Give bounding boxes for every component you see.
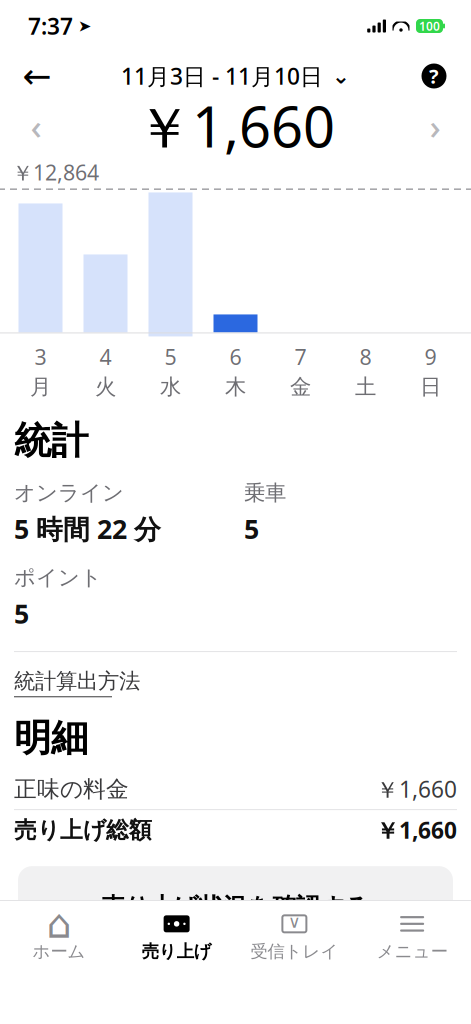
staticText: 売り上げ総額 bbox=[14, 816, 152, 844]
button[interactable]: 売り上げ状況を確認する bbox=[18, 866, 453, 936]
staticText: 火 bbox=[95, 374, 116, 400]
staticText: メニュー bbox=[377, 941, 448, 962]
staticText: 乗車 bbox=[244, 480, 286, 506]
staticText: 受信トレイ bbox=[250, 941, 338, 962]
staticText: 明細 bbox=[14, 715, 88, 761]
button[interactable]: 前の週 bbox=[14, 101, 58, 151]
staticText: 5 bbox=[244, 511, 259, 546]
staticText: 6 bbox=[229, 342, 241, 371]
staticText: 統計算出方法 bbox=[14, 668, 140, 694]
staticText: 5 時間 22 分 bbox=[14, 511, 161, 546]
staticText: ← bbox=[22, 56, 51, 96]
staticText: 木 bbox=[225, 374, 246, 400]
staticText: 月 bbox=[30, 374, 51, 400]
button[interactable]: ヘルプ bbox=[411, 54, 457, 98]
staticText: ∨ bbox=[288, 912, 301, 932]
staticText: ➤ bbox=[78, 17, 91, 35]
staticText: ポイント bbox=[14, 564, 102, 591]
staticText: 9 bbox=[424, 342, 436, 371]
staticText: ⌄ bbox=[332, 64, 350, 88]
staticText: 4 bbox=[99, 342, 111, 371]
button[interactable]: 戻る bbox=[14, 54, 60, 98]
staticText: 正味の料金 bbox=[14, 775, 129, 803]
staticText: 売り上げ bbox=[142, 941, 212, 962]
button[interactable]: 統計算出方法 bbox=[14, 652, 140, 703]
staticText: 売り上げ状況を確認する bbox=[101, 892, 370, 922]
staticText: 金 bbox=[290, 374, 311, 400]
staticText: 5 bbox=[14, 596, 29, 631]
staticText: 水 bbox=[160, 374, 181, 400]
button[interactable]: 11月3日 - 11月10日 bbox=[121, 54, 350, 98]
staticText: 統計 bbox=[14, 418, 88, 464]
staticText: ￥1,660 bbox=[376, 815, 457, 845]
staticText: 8 bbox=[359, 342, 371, 371]
staticText: ￥1,660 bbox=[376, 774, 457, 804]
staticText: 3 bbox=[34, 342, 46, 371]
staticText: 7 bbox=[294, 342, 306, 371]
staticText: ? bbox=[429, 63, 439, 89]
staticText: 日 bbox=[420, 374, 441, 400]
staticText: ￥12,864 bbox=[12, 158, 99, 186]
staticText: 土 bbox=[355, 374, 376, 400]
staticText: 100 bbox=[419, 18, 440, 34]
staticText: › bbox=[429, 103, 440, 149]
staticText: ‹ bbox=[30, 103, 41, 149]
staticText: ホーム bbox=[32, 941, 85, 962]
staticText: ⌂ bbox=[46, 901, 71, 947]
staticText: 7:37 bbox=[28, 11, 73, 41]
button[interactable]: メニュー bbox=[353, 903, 471, 962]
staticText: 11月3日 - 11月10日 bbox=[121, 61, 323, 91]
button[interactable]: 売り上げ bbox=[118, 903, 236, 962]
staticText: ￥1,660 bbox=[136, 89, 335, 163]
staticText: オンライン bbox=[14, 480, 124, 506]
button[interactable]: 次の週 bbox=[413, 101, 457, 151]
staticText: 5 bbox=[164, 342, 176, 371]
button[interactable]: ⌂ bbox=[0, 903, 118, 962]
button[interactable]: ∨ bbox=[235, 903, 353, 962]
